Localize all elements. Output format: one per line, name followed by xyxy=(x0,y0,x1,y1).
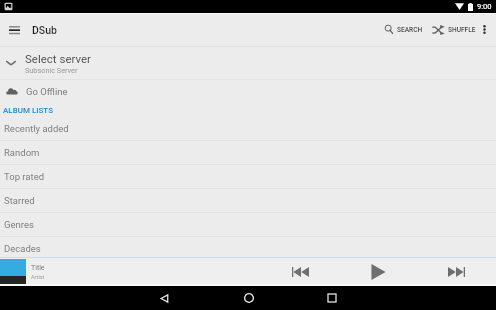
staticText: Recently added xyxy=(4,123,69,134)
staticText: Subsonic Server xyxy=(25,66,78,75)
button[interactable]: Open navigation drawer xyxy=(0,13,28,46)
staticText: Title xyxy=(31,264,45,272)
staticText: 9:00 xyxy=(477,2,492,11)
button[interactable]: Play xyxy=(365,258,392,285)
staticText: ALBUM LISTS xyxy=(3,106,53,115)
button[interactable]: Select server xyxy=(0,47,496,79)
staticText: Random xyxy=(4,147,40,158)
button[interactable]: More options xyxy=(474,13,494,46)
staticText: SHUFFLE xyxy=(448,26,476,34)
button[interactable]: Go Offline xyxy=(0,80,496,103)
staticText: Top rated xyxy=(4,171,45,182)
button[interactable]: Starred xyxy=(0,189,496,212)
button[interactable]: Random xyxy=(0,141,496,164)
button[interactable]: Genres xyxy=(0,213,496,236)
staticText: Select server xyxy=(25,52,91,65)
button[interactable]: SEARCH xyxy=(381,13,427,46)
staticText: Artist xyxy=(31,274,45,280)
button[interactable]: Previous xyxy=(287,258,314,285)
button[interactable]: Decades xyxy=(0,237,496,260)
staticText: Decades xyxy=(4,243,41,254)
staticText: Starred xyxy=(4,195,35,206)
staticText: Genres xyxy=(4,219,34,230)
staticText: SEARCH xyxy=(397,26,423,34)
button[interactable]: Title xyxy=(0,258,496,285)
button[interactable]: Recently added xyxy=(0,117,496,140)
button[interactable]: Home xyxy=(237,286,261,310)
button[interactable]: Back xyxy=(152,286,176,310)
button[interactable]: Top rated xyxy=(0,165,496,188)
button[interactable]: Next xyxy=(443,258,470,285)
staticText: DSub xyxy=(32,24,57,36)
staticText: Go Offline xyxy=(26,86,68,97)
button[interactable]: SHUFFLE xyxy=(428,13,480,46)
button[interactable]: Recent apps xyxy=(320,286,344,310)
